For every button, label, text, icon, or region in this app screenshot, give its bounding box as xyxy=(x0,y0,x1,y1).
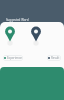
button[interactable]: Result xyxy=(48,56,60,60)
staticText: Experience xyxy=(7,56,22,60)
button[interactable]: End point xyxy=(30,26,42,42)
staticText: Suggested Word xyxy=(6,18,29,22)
button[interactable]: Start point xyxy=(4,26,16,42)
staticText: Result xyxy=(51,56,60,60)
button[interactable]: Experience xyxy=(4,56,22,60)
